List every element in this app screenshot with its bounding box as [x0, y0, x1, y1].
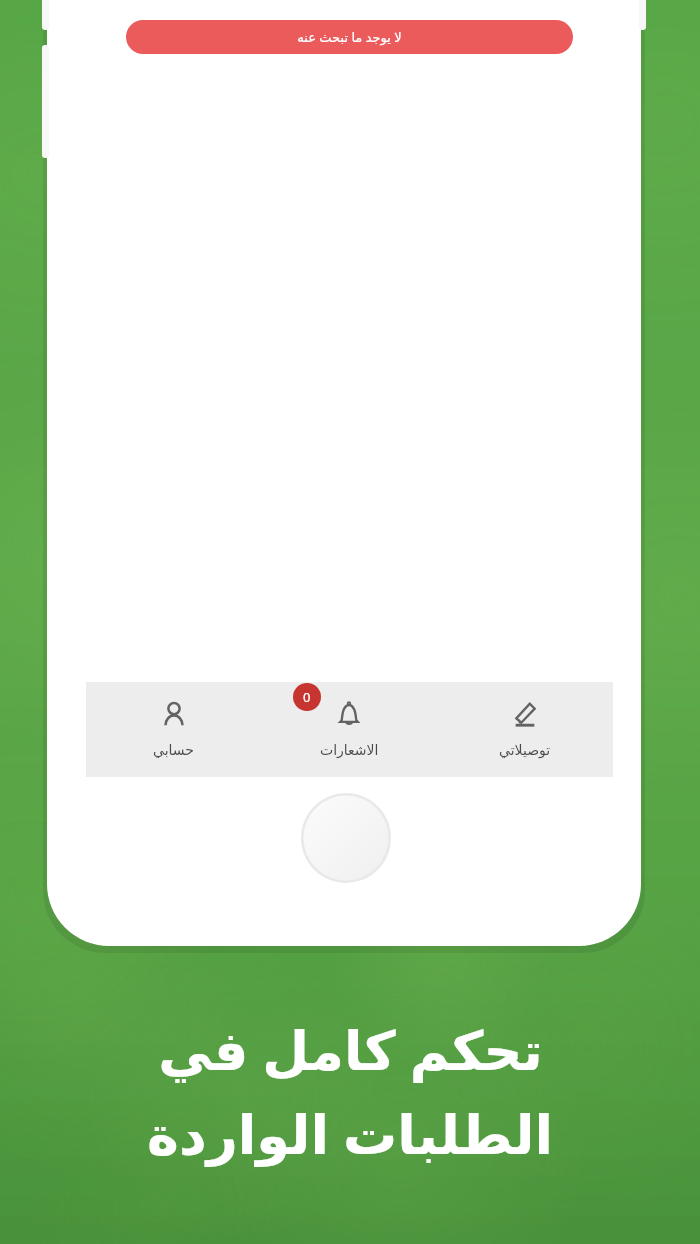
staticText: الاشعارات — [320, 742, 379, 758]
staticText: الطلبات الواردة — [147, 1096, 553, 1170]
button[interactable]: الاشعارات — [261, 682, 437, 777]
button[interactable]: لا يوجد ما تبحث عنه — [126, 20, 573, 54]
staticText: 0 — [303, 688, 311, 706]
staticText: تحكم كامل في — [158, 1012, 543, 1086]
staticText: حسابي — [153, 742, 194, 758]
button[interactable]: حسابي — [86, 682, 261, 777]
button[interactable]: توصيلاتي — [437, 682, 613, 777]
staticText: لا يوجد ما تبحث عنه — [297, 28, 402, 46]
staticText: توصيلاتي — [499, 742, 551, 758]
